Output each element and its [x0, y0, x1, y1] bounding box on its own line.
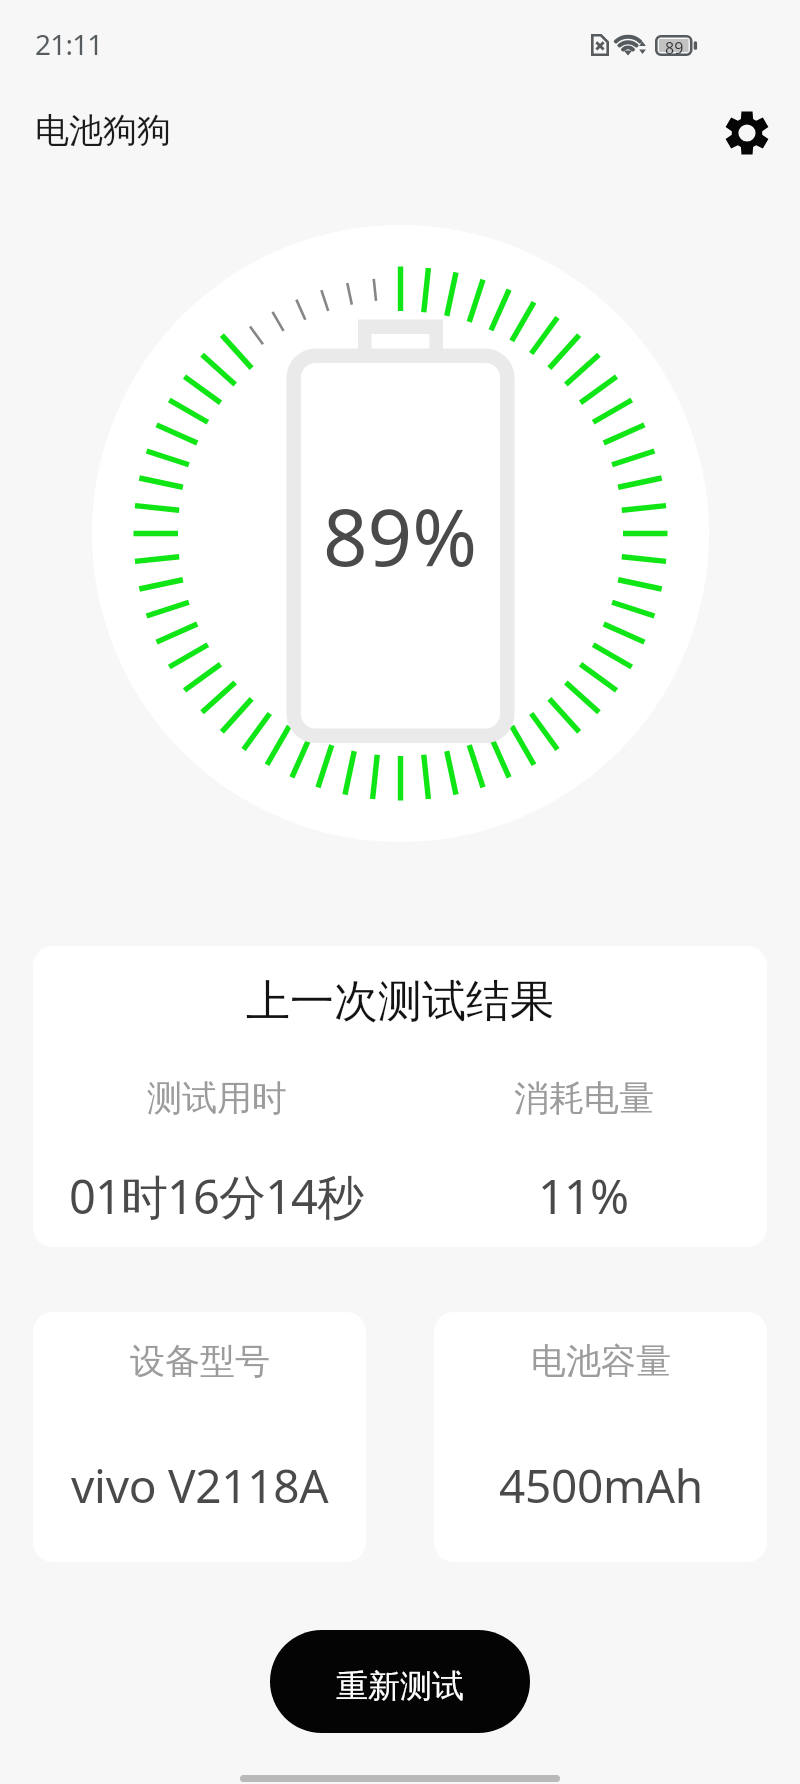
staticText: 89% — [323, 483, 478, 589]
button[interactable]: 设备型号 — [33, 1312, 366, 1562]
staticText: 89 — [665, 37, 684, 59]
staticText: 设备型号 — [130, 1339, 270, 1383]
staticText: 消耗电量 — [514, 1076, 654, 1120]
button[interactable]: 重新测试 — [270, 1630, 530, 1733]
button[interactable]: 电池容量 — [434, 1312, 767, 1562]
button[interactable]: 上一次测试结果 — [33, 946, 767, 1247]
staticText: 电池狗狗 — [35, 109, 171, 152]
staticText: 01时16分14秒 — [69, 1164, 364, 1228]
button[interactable]: Settings — [711, 98, 782, 169]
staticText: 测试用时 — [147, 1076, 287, 1120]
staticText: 重新测试 — [336, 1666, 464, 1706]
staticText: vivo V2118A — [71, 1454, 329, 1517]
staticText: 电池容量 — [531, 1339, 671, 1383]
staticText: 21:11 — [35, 25, 103, 63]
staticText: 11% — [538, 1164, 629, 1228]
staticText: 上一次测试结果 — [33, 974, 767, 1029]
staticText: 4500mAh — [499, 1454, 703, 1517]
